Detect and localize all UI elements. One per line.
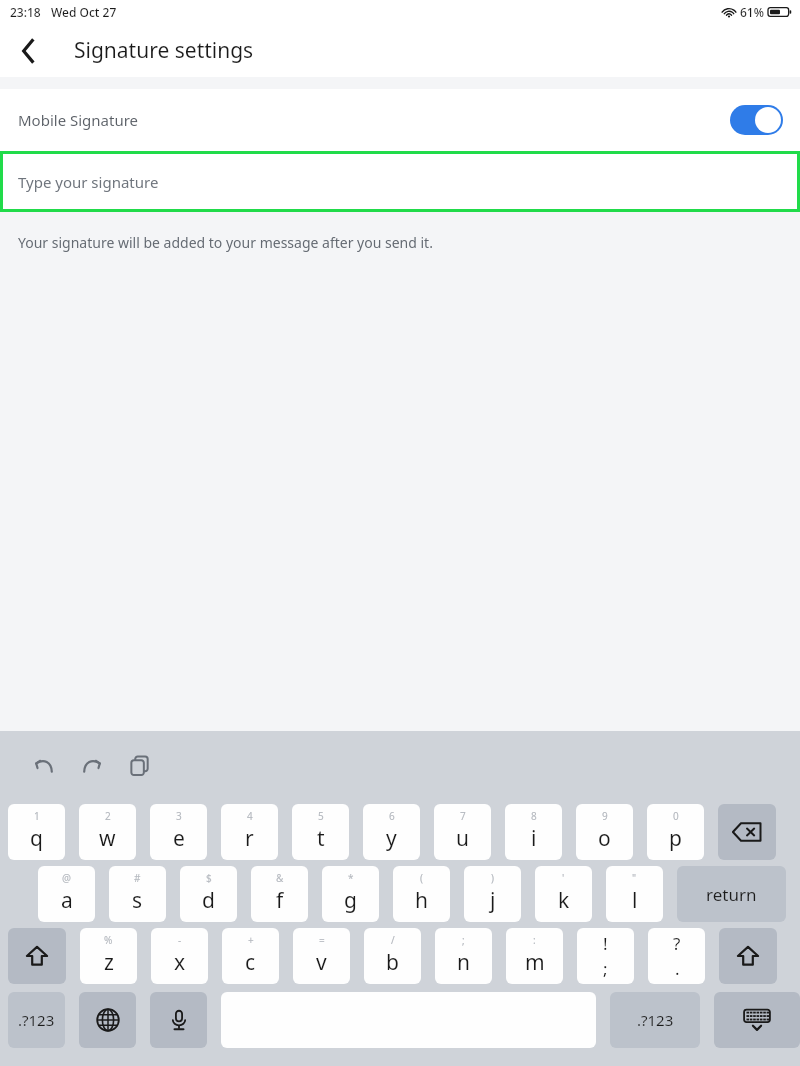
button[interactable]: 6: [363, 804, 420, 860]
button[interactable]: !: [577, 928, 634, 984]
staticText: .: [675, 957, 680, 980]
staticText: ;: [462, 933, 465, 947]
staticText: s: [132, 886, 143, 915]
staticText: v: [316, 948, 327, 977]
button[interactable]: Shift: [719, 928, 777, 984]
staticText: Type your signature: [18, 172, 159, 192]
button[interactable]: -: [151, 928, 208, 984]
staticText: -: [178, 933, 182, 947]
staticText: .?123: [18, 1010, 55, 1030]
staticText: ): [491, 871, 494, 885]
staticText: p: [669, 824, 682, 853]
staticText: h: [415, 886, 428, 915]
button[interactable]: Mobile Signature toggle: [730, 105, 783, 135]
button[interactable]: ?: [648, 928, 705, 984]
button[interactable]: @: [38, 866, 95, 922]
button[interactable]: Shift: [8, 928, 66, 984]
staticText: ?: [673, 932, 681, 955]
staticText: n: [457, 948, 470, 977]
button[interactable]: .?123: [610, 992, 700, 1048]
staticText: =: [319, 933, 325, 947]
staticText: x: [174, 948, 186, 977]
staticText: 6: [389, 809, 395, 823]
button[interactable]: ': [535, 866, 592, 922]
staticText: %: [104, 933, 113, 947]
button[interactable]: /: [364, 928, 421, 984]
staticText: ': [562, 871, 565, 885]
button[interactable]: Redo: [70, 744, 114, 788]
button[interactable]: %: [80, 928, 137, 984]
staticText: #: [134, 871, 141, 885]
staticText: Signature settings: [74, 36, 254, 65]
staticText: (: [420, 871, 423, 885]
button[interactable]: #: [109, 866, 166, 922]
staticText: 0: [673, 809, 679, 823]
button[interactable]: .?123: [8, 992, 65, 1048]
button[interactable]: 4: [221, 804, 278, 860]
button[interactable]: ): [464, 866, 521, 922]
button[interactable]: Voice input: [150, 992, 207, 1048]
staticText: $: [206, 871, 212, 885]
button[interactable]: 5: [292, 804, 349, 860]
staticText: 9: [602, 809, 608, 823]
button[interactable]: +: [222, 928, 279, 984]
button[interactable]: 2: [79, 804, 136, 860]
button[interactable]: 0: [647, 804, 704, 860]
staticText: b: [386, 948, 399, 977]
button[interactable]: $: [180, 866, 237, 922]
staticText: *: [348, 871, 354, 885]
staticText: Your signature will be added to your mes…: [18, 233, 433, 252]
staticText: t: [317, 824, 325, 853]
staticText: :: [533, 933, 536, 947]
button[interactable]: Paste: [118, 744, 162, 788]
staticText: @: [62, 871, 71, 885]
staticText: &: [276, 871, 284, 885]
button[interactable]: 9: [576, 804, 633, 860]
button[interactable]: (: [393, 866, 450, 922]
staticText: Wed Oct 27: [51, 4, 117, 20]
button[interactable]: ": [606, 866, 663, 922]
button[interactable]: 8: [505, 804, 562, 860]
button[interactable]: 1: [8, 804, 65, 860]
staticText: 2: [105, 809, 111, 823]
staticText: w: [99, 824, 116, 853]
staticText: 1: [34, 809, 40, 823]
staticText: i: [531, 824, 537, 853]
staticText: 61%: [740, 4, 764, 20]
button[interactable]: =: [293, 928, 350, 984]
staticText: ": [632, 871, 637, 885]
staticText: m: [525, 948, 545, 977]
staticText: +: [248, 933, 254, 947]
button[interactable]: &: [251, 866, 308, 922]
button[interactable]: Type your signature: [0, 151, 800, 212]
staticText: 23:18: [10, 4, 41, 20]
button[interactable]: Change keyboard: [79, 992, 136, 1048]
staticText: Mobile Signature: [18, 110, 139, 130]
staticText: c: [245, 948, 256, 977]
staticText: !: [603, 932, 608, 955]
staticText: d: [202, 886, 215, 915]
button[interactable]: Hide keyboard: [714, 992, 800, 1048]
staticText: 7: [460, 809, 466, 823]
button[interactable]: Undo: [22, 744, 66, 788]
staticText: 8: [531, 809, 537, 823]
button[interactable]: 7: [434, 804, 491, 860]
staticText: z: [104, 948, 114, 977]
staticText: y: [386, 824, 397, 853]
staticText: return: [706, 883, 757, 906]
staticText: o: [598, 824, 611, 853]
staticText: u: [456, 824, 469, 853]
button[interactable]: Back: [6, 29, 50, 73]
button[interactable]: Mobile Signature: [0, 89, 800, 151]
staticText: r: [245, 824, 254, 853]
staticText: e: [173, 824, 185, 853]
button[interactable]: 3: [150, 804, 207, 860]
button[interactable]: :: [506, 928, 563, 984]
button[interactable]: ;: [435, 928, 492, 984]
staticText: .?123: [637, 1010, 674, 1030]
staticText: q: [30, 824, 43, 853]
button[interactable]: *: [322, 866, 379, 922]
button[interactable]: Backspace: [718, 804, 776, 860]
button[interactable]: return: [677, 866, 786, 922]
